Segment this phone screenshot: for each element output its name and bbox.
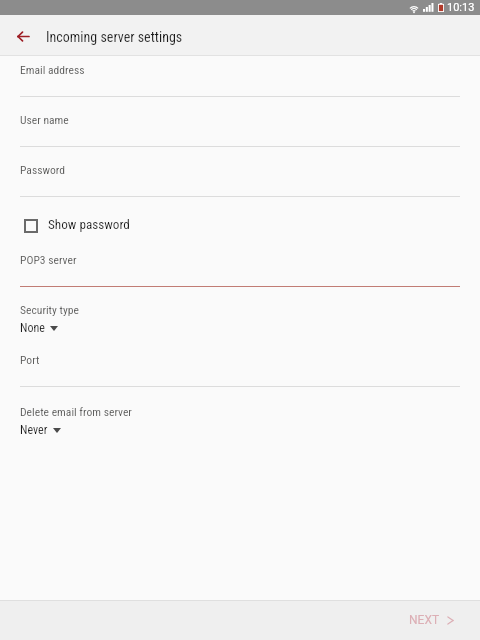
staticText: User name (20, 113, 69, 127)
button[interactable]: Back (5, 18, 41, 54)
staticText: Show password (48, 217, 130, 232)
button[interactable]: NEXT (397, 609, 467, 631)
staticText: None (20, 321, 45, 335)
staticText: Never (20, 423, 48, 437)
staticText: Password (20, 163, 66, 177)
staticText: Port (20, 353, 40, 367)
staticText: Security type (20, 303, 79, 317)
staticText: Incoming server settings (46, 29, 183, 45)
button[interactable]: Never (20, 421, 61, 439)
staticText: 10:13 (447, 1, 475, 14)
staticText: Email address (20, 63, 85, 77)
button[interactable]: Show password (0, 206, 480, 242)
button[interactable]: None (20, 319, 58, 337)
staticText: POP3 server (20, 253, 77, 267)
staticText: Delete email from server (20, 405, 132, 419)
staticText: NEXT (409, 613, 440, 627)
